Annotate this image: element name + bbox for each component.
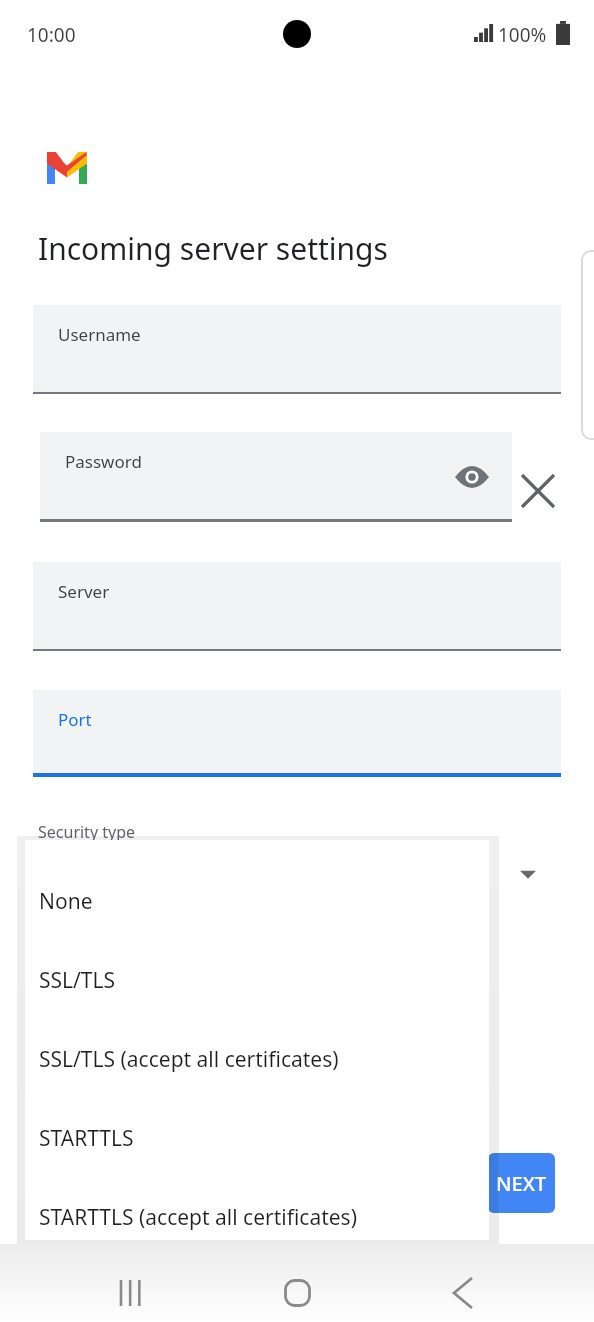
staticText: SSL/TLS (accept all certificates) — [39, 1045, 339, 1074]
button[interactable]: None — [25, 862, 489, 941]
button[interactable]: Show password — [452, 457, 492, 497]
button[interactable]: NEXT — [488, 1153, 555, 1213]
button[interactable]: Clear — [516, 469, 560, 513]
staticText: Incoming server settings — [38, 228, 388, 269]
button[interactable]: STARTTLS (accept all certificates) — [25, 1178, 489, 1257]
button[interactable]: Home — [257, 1253, 337, 1322]
staticText: Port — [58, 708, 92, 731]
staticText: Password — [65, 450, 142, 473]
staticText: Security type — [38, 821, 136, 843]
button[interactable]: Server — [33, 562, 561, 651]
button[interactable]: Open security type menu — [506, 852, 550, 896]
staticText: NEXT — [496, 1170, 547, 1197]
staticText: 100% — [498, 22, 547, 48]
staticText: STARTTLS (accept all certificates) — [39, 1203, 357, 1232]
staticText: Server — [58, 580, 110, 603]
button[interactable]: Port — [33, 690, 561, 777]
staticText: Username — [58, 323, 141, 346]
button[interactable]: Recents — [91, 1253, 171, 1322]
staticText: SSL/TLS — [39, 966, 116, 995]
staticText: STARTTLS — [39, 1124, 134, 1153]
button[interactable]: Password — [40, 432, 512, 522]
button[interactable]: SSL/TLS (accept all certificates) — [25, 1020, 489, 1099]
button[interactable]: STARTTLS — [25, 1099, 489, 1178]
button[interactable]: SSL/TLS — [25, 941, 489, 1020]
button[interactable]: Back — [423, 1253, 503, 1322]
button[interactable]: Username — [33, 305, 561, 394]
staticText: None — [39, 887, 93, 916]
staticText: 10:00 — [27, 22, 76, 48]
